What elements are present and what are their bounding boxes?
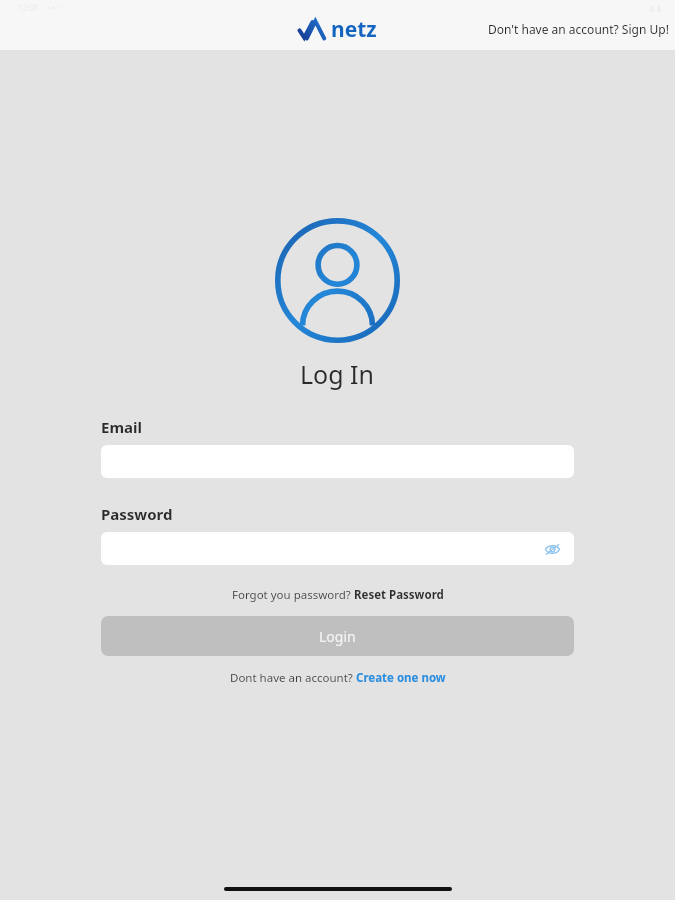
- button[interactable]: Create one now: [356, 670, 446, 686]
- staticText: Password: [101, 504, 173, 524]
- button[interactable]: Reset Password: [354, 587, 444, 603]
- button[interactable]: Don't have an account? Sign Up!: [482, 17, 675, 41]
- staticText: Reset Password: [354, 587, 444, 603]
- staticText: Dont have an account?: [230, 670, 356, 686]
- button[interactable]: Show password: [542, 539, 562, 559]
- button[interactable]: netz: [299, 15, 377, 44]
- staticText: Forgot you password?: [232, 587, 354, 603]
- staticText: Login: [319, 627, 356, 646]
- staticText: ▮ ▮: [650, 2, 661, 13]
- staticText: Log In: [300, 357, 375, 391]
- button[interactable]: Login: [101, 616, 574, 656]
- staticText: Email: [101, 417, 142, 437]
- staticText: netz: [331, 15, 377, 44]
- staticText: Don't have an account? Sign Up!: [488, 21, 669, 37]
- staticText: Create one now: [356, 670, 446, 686]
- button[interactable]: Show password: [101, 532, 574, 565]
